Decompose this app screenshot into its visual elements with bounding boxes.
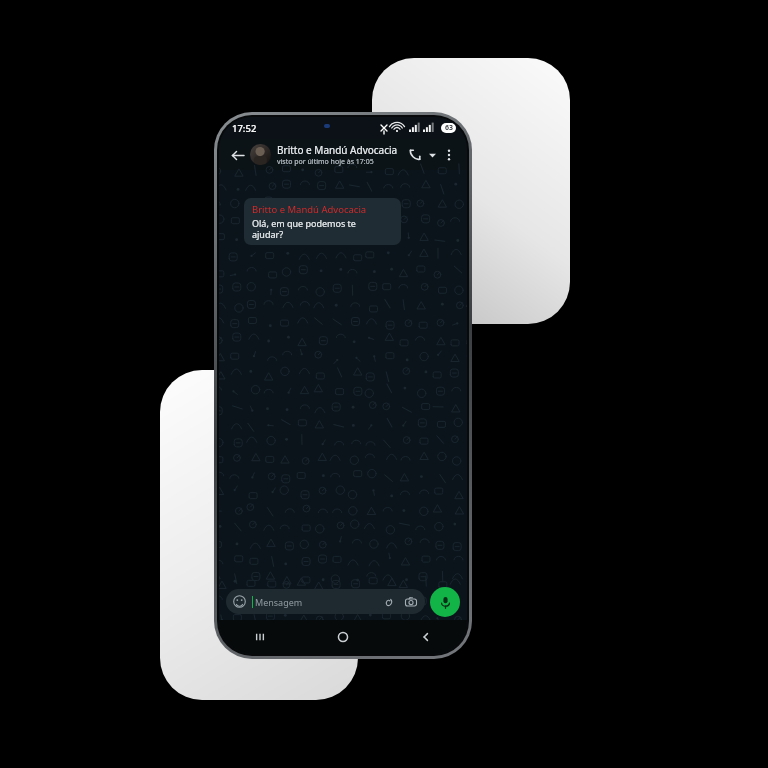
button[interactable]: Back <box>227 145 247 165</box>
other: Emoji <box>233 595 246 608</box>
button[interactable]: Britto e Mandú Advocacia <box>244 198 401 245</box>
button[interactable]: Britto e Mandú Advocacia <box>277 143 405 167</box>
staticText: Britto e Mandú Advocacia <box>252 203 367 216</box>
button[interactable]: Camera <box>404 595 418 609</box>
button[interactable]: Voice message <box>430 587 460 617</box>
button[interactable]: More options <box>439 145 459 165</box>
staticText: Mensagem <box>255 596 303 608</box>
staticText: Olá, em que podemos te ajudar? <box>252 217 356 240</box>
button[interactable]: Profile photo <box>250 144 271 165</box>
staticText: visto por último hoje às 17:05 <box>277 157 374 167</box>
button[interactable]: Emoji <box>226 589 425 614</box>
button[interactable]: Call <box>405 145 425 165</box>
staticText: 17:52 <box>232 122 257 135</box>
button[interactable]: Video call options <box>425 148 439 162</box>
button[interactable]: Recent apps <box>219 620 301 654</box>
button[interactable]: Home <box>301 620 384 654</box>
button[interactable]: Back <box>384 620 467 654</box>
button[interactable]: Attach <box>381 595 395 609</box>
staticText: 63 <box>445 123 454 133</box>
staticText: Britto e Mandú Advocacia <box>277 143 398 157</box>
